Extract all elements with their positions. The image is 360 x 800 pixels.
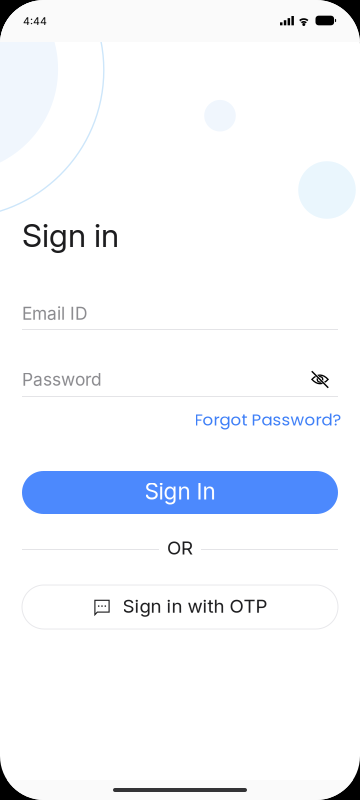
- staticText: Forgot Password?: [194, 408, 341, 431]
- staticText: Sign In: [144, 478, 215, 505]
- staticText: OR: [167, 536, 193, 559]
- button[interactable]: Sign in with OTP: [22, 585, 338, 629]
- staticText: Email ID: [22, 303, 88, 324]
- staticText: Sign in with OTP: [122, 595, 267, 617]
- staticText: 4:44: [23, 15, 47, 28]
- button[interactable]: Sign In: [22, 471, 338, 514]
- button[interactable]: Show password: [305, 364, 334, 394]
- staticText: Password: [22, 369, 102, 390]
- staticText: Sign in: [22, 216, 119, 255]
- button[interactable]: Forgot Password?: [194, 408, 341, 431]
